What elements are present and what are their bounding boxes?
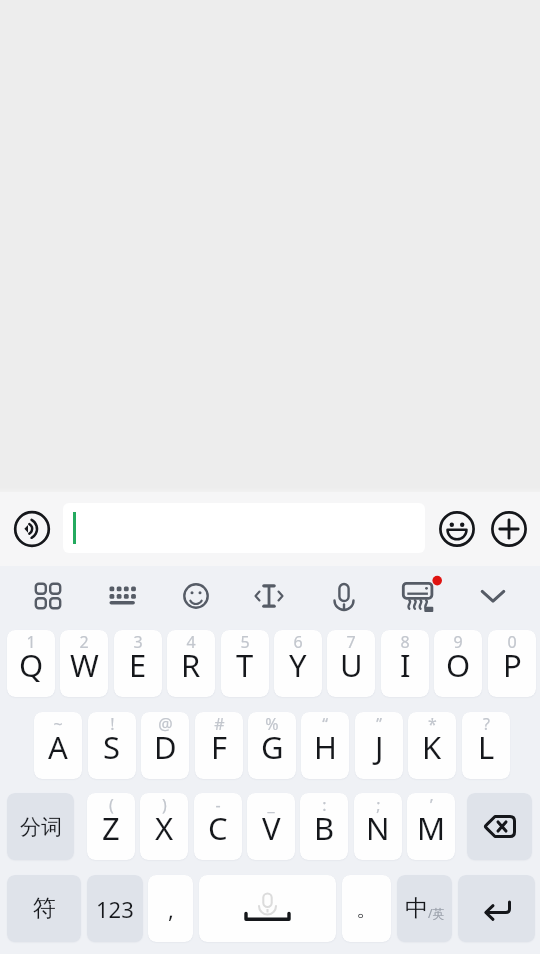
button[interactable]: Emoticon	[173, 573, 219, 619]
staticText: X	[155, 807, 174, 849]
button[interactable]: 2	[60, 630, 108, 697]
staticText: !	[110, 713, 115, 735]
button[interactable]: ~	[34, 712, 82, 779]
staticText: #	[214, 713, 225, 735]
button[interactable]: Backspace	[467, 793, 532, 860]
button[interactable]: Move cursor	[246, 573, 292, 619]
staticText: 2	[79, 631, 89, 653]
staticText: /英	[428, 905, 445, 921]
staticText: %	[265, 713, 279, 735]
button[interactable]: Keyboard layout	[99, 573, 145, 619]
button[interactable]: 4	[167, 630, 215, 697]
button[interactable]: *	[408, 712, 456, 779]
staticText: L	[478, 726, 495, 768]
button[interactable]: Emoji	[435, 507, 479, 551]
button[interactable]: Hide keyboard	[470, 573, 516, 619]
button[interactable]: 分词	[7, 793, 74, 860]
staticText: ”	[376, 713, 382, 735]
button[interactable]: 符	[7, 875, 81, 942]
staticText: P	[503, 644, 522, 686]
button[interactable]: 5	[221, 630, 269, 697]
button[interactable]: %	[248, 712, 296, 779]
staticText: V	[262, 807, 281, 849]
button[interactable]	[63, 503, 425, 553]
staticText: ?	[483, 713, 490, 735]
staticText: ~	[53, 713, 63, 735]
staticText: C	[208, 807, 228, 849]
staticText: J	[375, 726, 384, 768]
button[interactable]: !	[88, 712, 136, 779]
button[interactable]: 中	[397, 875, 452, 942]
button[interactable]: Apps	[25, 573, 71, 619]
staticText: 6	[293, 631, 303, 653]
button[interactable]: Space	[199, 875, 336, 942]
staticText: F	[211, 726, 228, 768]
button[interactable]: 123	[87, 875, 143, 942]
staticText: R	[181, 644, 201, 686]
staticText: O	[446, 644, 471, 686]
staticText: W	[70, 644, 99, 686]
button[interactable]: ”	[355, 712, 403, 779]
button[interactable]: -	[194, 793, 242, 860]
button[interactable]: 1	[7, 630, 55, 697]
staticText: 1	[26, 631, 36, 653]
staticText: N	[366, 807, 390, 849]
staticText: 5	[240, 631, 250, 653]
staticText: 符	[33, 894, 56, 923]
button[interactable]: 6	[274, 630, 322, 697]
staticText: 123	[96, 894, 134, 924]
staticText: B	[314, 807, 335, 849]
button[interactable]: “	[301, 712, 349, 779]
staticText: 4	[186, 631, 196, 653]
button[interactable]: ,	[148, 875, 193, 942]
button[interactable]: 9	[434, 630, 482, 697]
button[interactable]: ?	[462, 712, 510, 779]
button[interactable]: Keyboard theme	[393, 571, 443, 621]
button[interactable]: #	[195, 712, 243, 779]
staticText: -	[215, 794, 221, 816]
button[interactable]: 0	[488, 630, 536, 697]
staticText: _	[267, 794, 275, 816]
staticText: Q	[19, 644, 44, 686]
staticText: 分词	[20, 814, 62, 840]
button[interactable]: )	[140, 793, 188, 860]
staticText: 。	[356, 895, 378, 923]
staticText: @	[158, 713, 173, 735]
button[interactable]: _	[247, 793, 295, 860]
staticText: I	[400, 644, 411, 686]
staticText: A	[48, 726, 68, 768]
staticText: (	[109, 794, 114, 816]
staticText: T	[236, 644, 254, 686]
staticText: Y	[289, 644, 307, 686]
staticText: K	[422, 726, 442, 768]
button[interactable]: 8	[381, 630, 429, 697]
button[interactable]: More options	[487, 507, 531, 551]
button[interactable]: ’	[407, 793, 455, 860]
staticText: 7	[346, 631, 356, 653]
staticText: ;	[376, 794, 381, 816]
button[interactable]: Enter	[458, 875, 535, 942]
button[interactable]: 3	[114, 630, 162, 697]
staticText: U	[340, 644, 363, 686]
button[interactable]: @	[141, 712, 189, 779]
staticText: S	[103, 726, 121, 768]
button[interactable]: 。	[342, 875, 391, 942]
staticText: 8	[400, 631, 410, 653]
staticText: )	[162, 794, 167, 816]
button[interactable]: :	[300, 793, 348, 860]
staticText: H	[314, 726, 337, 768]
button[interactable]: (	[87, 793, 135, 860]
staticText: ’	[430, 794, 433, 816]
staticText: 中	[405, 894, 428, 923]
staticText: 3	[133, 631, 143, 653]
button[interactable]: 7	[327, 630, 375, 697]
staticText: M	[417, 807, 446, 849]
staticText: ,	[168, 894, 174, 924]
staticText: 9	[453, 631, 463, 653]
staticText: D	[154, 726, 177, 768]
button[interactable]: Voice typing	[321, 573, 367, 619]
button[interactable]: ;	[354, 793, 402, 860]
button[interactable]: Voice input	[10, 507, 54, 551]
staticText: E	[129, 644, 147, 686]
staticText: G	[261, 726, 284, 768]
